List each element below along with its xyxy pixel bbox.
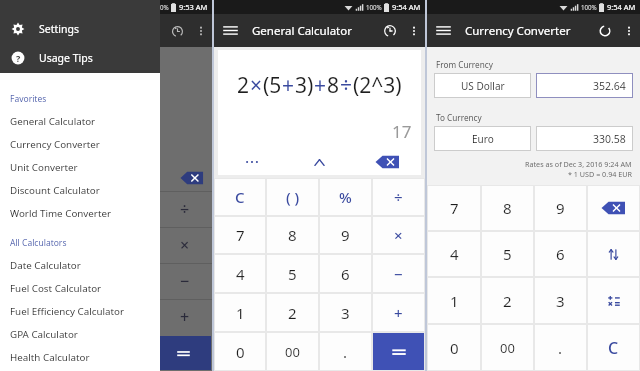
button[interactable]: More options xyxy=(618,20,640,42)
staticText: General Calculator xyxy=(10,115,96,128)
button[interactable]: Settings xyxy=(0,14,160,43)
staticText: ÷ xyxy=(340,71,353,100)
button[interactable]: × xyxy=(373,217,424,253)
button[interactable]: 5 xyxy=(267,255,318,292)
staticText: + xyxy=(394,303,403,323)
staticText: 17 xyxy=(392,120,412,143)
button[interactable]: 9 xyxy=(535,186,586,230)
staticText: 2 xyxy=(237,71,250,100)
button[interactable]: 7 xyxy=(428,186,480,230)
button[interactable]: . xyxy=(535,325,586,370)
button[interactable]: Date Calculator xyxy=(0,254,160,277)
staticText: To Currency xyxy=(436,112,482,123)
staticText: 100% xyxy=(581,3,597,11)
button[interactable]: Euro xyxy=(434,126,531,151)
button[interactable]: 8 xyxy=(267,217,318,253)
staticText: 3 xyxy=(556,291,565,311)
staticText: Fuel Efficiency Calculator xyxy=(10,305,125,318)
staticText: ÷ xyxy=(157,198,212,220)
button[interactable]: 9 xyxy=(320,217,371,253)
button[interactable]: 00 xyxy=(482,325,533,370)
staticText: 100% xyxy=(366,3,382,11)
button[interactable]: Unit Converter xyxy=(0,156,160,179)
button[interactable]: C xyxy=(215,179,265,215)
staticText: From Currency xyxy=(436,59,493,70)
button[interactable]: 3 xyxy=(320,294,371,331)
staticText: 1 xyxy=(450,291,459,311)
staticText: C xyxy=(235,187,245,207)
staticText: Date Calculator xyxy=(10,259,81,272)
button[interactable]: 330.58 xyxy=(536,126,633,151)
staticText: 4 xyxy=(236,264,245,284)
button[interactable]: GPA Calculator xyxy=(0,323,160,346)
staticText: ÷ xyxy=(394,187,403,207)
staticText: 7 xyxy=(450,198,459,218)
button[interactable]: US Dollar xyxy=(434,73,531,98)
staticText: . xyxy=(343,342,348,362)
button[interactable]: History xyxy=(164,18,190,44)
staticText: 3 xyxy=(341,303,350,323)
button[interactable] xyxy=(373,333,424,370)
button[interactable]: Open navigation drawer xyxy=(427,14,460,47)
button[interactable]: ÷ xyxy=(373,179,424,215)
button[interactable]: 00 xyxy=(267,333,318,370)
staticText: + xyxy=(314,71,327,100)
button[interactable]: Fuel Cost Calculator xyxy=(0,277,160,300)
button[interactable] xyxy=(156,336,211,370)
button[interactable] xyxy=(588,232,639,276)
button[interactable]: World Time Converter xyxy=(0,202,160,225)
button[interactable]: 3 xyxy=(535,278,586,323)
staticText: − xyxy=(394,264,403,284)
button[interactable]: 0 xyxy=(428,325,480,370)
button[interactable]: 1 xyxy=(215,294,265,331)
button[interactable]: Power xyxy=(285,149,353,175)
staticText: 9 xyxy=(556,198,565,218)
button[interactable]: Refresh rates xyxy=(592,18,618,44)
staticText: 352.64 xyxy=(593,79,626,93)
button[interactable]: More options xyxy=(190,20,212,42)
button[interactable]: General Calculator xyxy=(0,110,160,133)
button[interactable] xyxy=(588,186,639,230)
button[interactable]: 5 xyxy=(482,232,533,276)
staticText: 2 xyxy=(288,303,297,323)
button[interactable]: Discount Calculator xyxy=(0,179,160,202)
button[interactable]: 2 xyxy=(482,278,533,323)
button[interactable]: ? xyxy=(0,43,160,72)
staticText: ? xyxy=(16,52,21,64)
staticText: 9:54 AM xyxy=(607,2,636,12)
button[interactable]: . xyxy=(320,333,371,370)
button[interactable]: History xyxy=(377,18,403,44)
button[interactable]: ( ) xyxy=(267,179,318,215)
button[interactable]: Health Calculator xyxy=(0,346,160,369)
staticText: % xyxy=(339,187,352,207)
button[interactable]: 4 xyxy=(215,255,265,292)
button[interactable]: 1 xyxy=(428,278,480,323)
button[interactable]: 352.64 xyxy=(536,73,633,98)
button[interactable]: Open navigation drawer xyxy=(214,14,247,47)
button[interactable]: C xyxy=(588,325,639,370)
staticText: 00 xyxy=(285,343,300,361)
button[interactable]: 4 xyxy=(428,232,480,276)
staticText: 7 xyxy=(236,225,245,245)
button[interactable]: More options xyxy=(403,20,425,42)
staticText: 2 xyxy=(503,291,512,311)
button[interactable] xyxy=(588,278,639,323)
button[interactable]: 6 xyxy=(535,232,586,276)
button[interactable]: Fuel Efficiency Calculator xyxy=(0,300,160,323)
button[interactable]: 8 xyxy=(482,186,533,230)
staticText: 0 xyxy=(236,342,245,362)
button[interactable]: % xyxy=(320,179,371,215)
button[interactable]: 6 xyxy=(320,255,371,292)
staticText: 8 xyxy=(327,71,340,100)
staticText: Fuel Cost Calculator xyxy=(10,282,102,295)
button[interactable]: 7 xyxy=(215,217,265,253)
staticText: Euro xyxy=(472,132,494,146)
button[interactable]: 2 xyxy=(267,294,318,331)
staticText: × xyxy=(250,71,263,100)
button[interactable]: − xyxy=(373,255,424,292)
button[interactable]: More functions xyxy=(218,149,285,175)
button[interactable]: 0 xyxy=(215,333,265,370)
button[interactable]: + xyxy=(373,294,424,331)
button[interactable]: Currency Converter xyxy=(0,133,160,156)
button[interactable]: Backspace xyxy=(353,149,421,175)
